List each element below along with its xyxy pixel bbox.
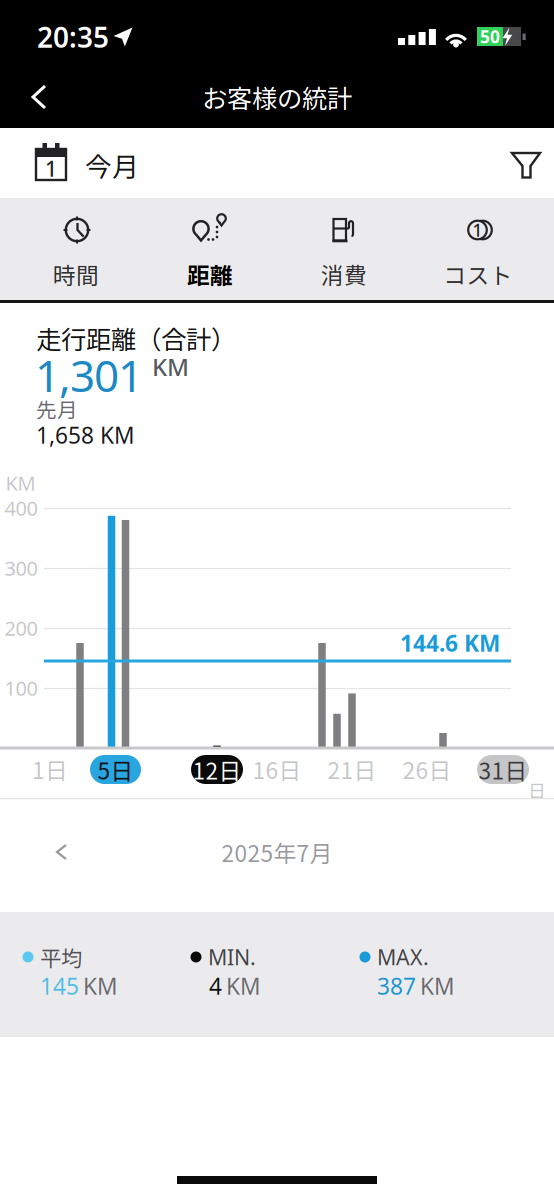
staticText: KM [420,971,455,1001]
staticText: 走行距離（合計） [36,320,236,356]
staticText: 先月 [36,394,78,424]
button[interactable]: 消費 [279,200,409,298]
button[interactable]: 12日 [191,755,243,784]
button[interactable]: 前の月 [40,834,84,870]
staticText: KM [83,971,118,1001]
staticText: 145 [40,971,79,1001]
staticText: 144.6 KM [400,628,500,658]
staticText: 今月 [85,146,139,184]
staticText: 1日 [32,753,68,785]
staticText: 16日 [252,753,301,785]
staticText: 387 [377,971,416,1001]
staticText: 200 [4,615,37,641]
button[interactable]: 時間 [11,200,141,298]
staticText: 4 [209,971,222,1001]
staticText: 31日 [478,753,527,786]
staticText: KM [5,470,35,496]
staticText: 消費 [321,258,367,290]
staticText: 2025年7月 [221,836,332,868]
button[interactable]: フィルター [508,150,552,190]
staticText: コスト [443,258,512,290]
button[interactable]: 5日 [90,755,141,784]
button[interactable]: 戻る [20,81,64,113]
staticText: 20:35 [37,18,109,56]
button[interactable]: 1 [413,200,543,298]
staticText: 1 [472,218,482,241]
staticText: MIN. [208,943,256,971]
staticText: 5日 [97,753,133,786]
staticText: KM [226,971,261,1001]
staticText: 時間 [53,258,99,290]
staticText: 1,301 [35,346,143,404]
staticText: 日 [528,777,546,803]
staticText: 400 [4,495,37,521]
staticText: 300 [4,555,37,581]
staticText: 1,658 KM [36,420,135,450]
staticText: 100 [4,675,37,701]
button[interactable]: 距離 [145,200,275,298]
staticText: 1 [45,154,57,183]
button[interactable]: 1 [30,140,150,188]
staticText: 21日 [327,753,376,785]
staticText: 距離 [187,258,233,290]
staticText: 平均 [40,942,82,972]
staticText: 50 [480,25,500,48]
staticText: 12日 [192,753,241,786]
button[interactable]: 31日 [477,755,529,784]
staticText: 26日 [402,753,451,785]
staticText: お客様の統計 [202,79,352,115]
staticText: KM [152,351,189,383]
staticText: MAX. [377,943,429,971]
